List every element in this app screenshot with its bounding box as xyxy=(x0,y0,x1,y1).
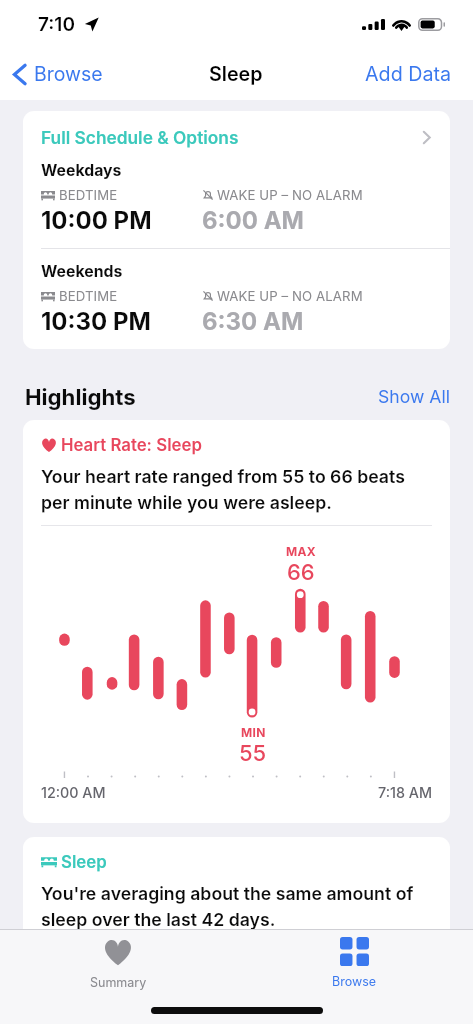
staticText: Heart Rate: Sleep xyxy=(61,435,202,455)
button[interactable]: Browse xyxy=(0,62,111,86)
staticText: BEDTIME xyxy=(59,288,118,304)
button[interactable]: Show All xyxy=(378,386,450,407)
staticText: WAKE UP – NO ALARM xyxy=(217,288,363,304)
button[interactable]: Heart Rate: Sleep xyxy=(23,420,450,823)
other: Browse xyxy=(340,937,369,966)
staticText: Full Schedule & Options xyxy=(41,127,239,148)
staticText: Summary xyxy=(90,975,147,990)
staticText: 7:10 xyxy=(38,13,75,36)
staticText: Weekends xyxy=(41,262,123,281)
staticText: Browse xyxy=(34,62,103,86)
staticText: MIN xyxy=(241,725,266,740)
staticText: 10:30 PM xyxy=(41,307,151,336)
button[interactable]: Full Schedule & Options xyxy=(23,111,450,161)
staticText: MAX xyxy=(286,544,316,559)
staticText: Sleep xyxy=(209,62,263,86)
staticText: 55 xyxy=(239,740,267,767)
button[interactable]: Summary xyxy=(0,930,236,990)
staticText: Weekdays xyxy=(41,161,122,180)
staticText: BEDTIME xyxy=(59,187,118,203)
staticText: 7:18 AM xyxy=(378,784,432,801)
staticText: 6:00 AM xyxy=(202,206,304,235)
staticText: Browse xyxy=(332,974,377,989)
staticText: WAKE UP – NO ALARM xyxy=(217,187,363,203)
other: Home indicator xyxy=(151,1007,323,1014)
staticText: 12:00 AM xyxy=(41,784,106,801)
staticText: 66 xyxy=(287,559,315,586)
staticText: 10:00 PM xyxy=(41,206,152,235)
staticText: You're averaging about the same amount o… xyxy=(41,883,432,930)
staticText: Your heart rate ranged from 55 to 66 bea… xyxy=(41,466,432,513)
button[interactable]: Browse xyxy=(236,930,473,989)
button[interactable]: Add Data xyxy=(342,62,473,86)
staticText: Sleep xyxy=(61,852,107,872)
staticText: 6:30 AM xyxy=(202,307,304,336)
staticText: Highlights xyxy=(25,383,136,410)
button[interactable]: Sleep xyxy=(23,837,450,954)
